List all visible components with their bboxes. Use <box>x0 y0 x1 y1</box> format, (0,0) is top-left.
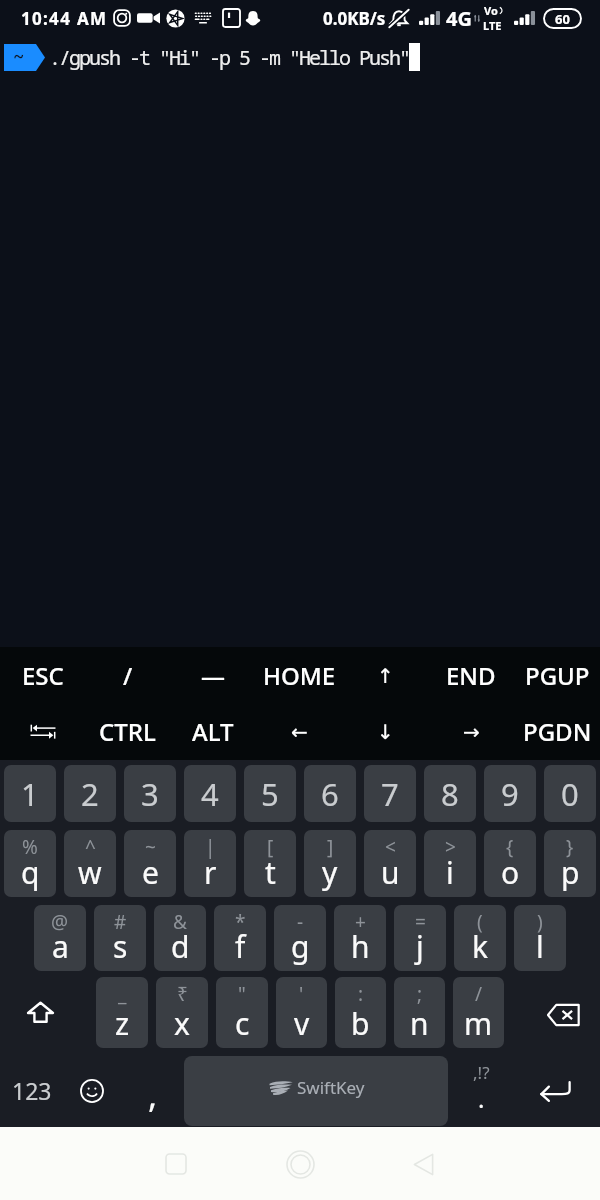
button[interactable]: 3 <box>124 765 176 822</box>
button[interactable]: Tab <box>0 703 85 760</box>
button[interactable]: HOME <box>256 647 342 703</box>
staticText: 4G <box>446 5 472 32</box>
staticText: ( <box>477 909 483 935</box>
button[interactable]: 2 <box>64 765 116 822</box>
button[interactable]: ; <box>394 977 445 1048</box>
staticText: * <box>235 909 246 935</box>
staticText: c <box>235 1003 250 1044</box>
button[interactable]: / <box>453 977 504 1048</box>
staticText: ALT <box>192 715 234 748</box>
button[interactable]: } <box>544 830 596 897</box>
button[interactable]: & <box>154 905 206 971</box>
staticText: g <box>291 926 310 967</box>
button[interactable]: : <box>335 977 386 1048</box>
staticText: 4 <box>201 773 219 815</box>
staticText: ' <box>299 981 304 1007</box>
button[interactable]: 1 <box>4 765 56 822</box>
button[interactable]: ) <box>514 905 566 971</box>
staticText: a <box>52 926 69 967</box>
staticText: d <box>171 926 190 967</box>
staticText: → <box>463 720 480 743</box>
button[interactable]: CTRL <box>85 703 170 760</box>
staticText: 3 <box>141 773 159 815</box>
button[interactable]: " <box>216 977 268 1048</box>
staticText: { <box>506 834 514 860</box>
staticText: END <box>446 659 496 692</box>
staticText: v <box>294 1003 310 1044</box>
staticText: 123 <box>12 1075 52 1106</box>
button[interactable]: SwiftKey <box>184 1056 448 1126</box>
button[interactable]: ,!? <box>448 1056 520 1126</box>
button[interactable]: ~ <box>124 830 176 897</box>
button[interactable]: [ <box>244 830 296 897</box>
button[interactable]: , <box>121 1056 184 1126</box>
button[interactable]: < <box>364 830 416 897</box>
staticText: f <box>235 926 246 967</box>
button[interactable]: = <box>394 905 446 971</box>
button[interactable]: 123 <box>0 1056 63 1126</box>
staticText: LTE <box>483 18 502 33</box>
button[interactable]: → <box>428 703 514 760</box>
button[interactable]: ( <box>454 905 506 971</box>
button[interactable]: % <box>4 830 56 897</box>
button[interactable]: 9 <box>484 765 536 822</box>
button[interactable]: / <box>85 647 170 703</box>
button[interactable]: 8 <box>424 765 476 822</box>
staticText: s <box>113 926 128 967</box>
button[interactable]: END <box>428 647 514 703</box>
button[interactable]: PGUP <box>514 647 600 703</box>
button[interactable]: Emoji <box>63 1056 121 1126</box>
staticText: " <box>238 981 246 1007</box>
button[interactable]: - <box>274 905 326 971</box>
button[interactable]: 0 <box>544 765 596 822</box>
button[interactable]: Back <box>393 1134 453 1194</box>
button[interactable]: ↓ <box>342 703 428 760</box>
button[interactable]: ' <box>276 977 327 1048</box>
button[interactable]: * <box>214 905 266 971</box>
staticText: o <box>501 852 520 893</box>
button[interactable]: 7 <box>364 765 416 822</box>
staticText: ~ <box>13 44 25 70</box>
staticText: > <box>445 834 456 860</box>
button[interactable]: _ <box>96 977 148 1048</box>
button[interactable]: ← <box>256 703 342 760</box>
button[interactable]: ] <box>304 830 356 897</box>
staticText: l <box>536 926 544 967</box>
button[interactable]: | <box>184 830 236 897</box>
staticText: Vo <box>484 3 498 18</box>
button[interactable]: ^ <box>64 830 116 897</box>
button[interactable]: ↑ <box>342 647 428 703</box>
staticText: ~ <box>145 834 156 860</box>
staticText: i <box>446 852 454 893</box>
button[interactable]: Backspace <box>508 977 600 1048</box>
button[interactable]: # <box>94 905 146 971</box>
staticText: ; <box>417 981 423 1007</box>
button[interactable]: 4 <box>184 765 236 822</box>
staticText: p <box>561 852 580 893</box>
button[interactable]: > <box>424 830 476 897</box>
staticText: ^ <box>85 834 96 860</box>
staticText: & <box>173 909 187 935</box>
button[interactable]: 6 <box>304 765 356 822</box>
staticText: 1 <box>21 773 39 815</box>
staticText: ESC <box>22 659 64 692</box>
button[interactable]: Enter <box>520 1056 600 1126</box>
button[interactable]: 5 <box>244 765 296 822</box>
button[interactable]: ESC <box>0 647 85 703</box>
button[interactable]: Recents <box>146 1134 206 1194</box>
button[interactable]: { <box>484 830 536 897</box>
staticText: PGUP <box>525 659 590 692</box>
button[interactable]: + <box>334 905 386 971</box>
button[interactable]: ₹ <box>156 977 208 1048</box>
staticText: 6 <box>321 773 339 815</box>
button[interactable]: Home <box>270 1134 330 1194</box>
button[interactable]: @ <box>34 905 86 971</box>
button[interactable]: ALT <box>170 703 256 760</box>
button[interactable]: ~ <box>0 36 600 647</box>
staticText: ] <box>327 834 334 860</box>
button[interactable]: PGDN <box>514 703 600 760</box>
staticText: 60 <box>555 10 570 28</box>
button[interactable]: — <box>170 647 256 703</box>
staticText: u <box>381 852 400 893</box>
button[interactable]: Shift <box>0 977 92 1048</box>
